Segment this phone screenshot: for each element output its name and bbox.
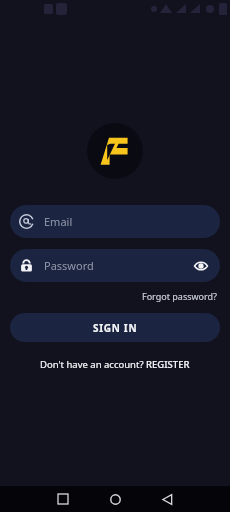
staticText: Password bbox=[44, 258, 94, 273]
button[interactable]: Forgot password? bbox=[140, 289, 220, 303]
button[interactable]: Don't have an account? bbox=[36, 356, 194, 373]
button[interactable]: Recent apps bbox=[46, 486, 80, 512]
staticText: REGISTER bbox=[146, 358, 190, 371]
button[interactable]: SIGN IN bbox=[10, 313, 220, 342]
staticText: Don't have an account? bbox=[40, 358, 146, 371]
staticText: Forgot password? bbox=[142, 290, 218, 302]
other: Email bbox=[19, 214, 34, 229]
other: Password bbox=[19, 258, 34, 273]
button[interactable]: Back bbox=[150, 486, 184, 512]
button[interactable]: Password bbox=[10, 249, 220, 282]
button[interactable]: Home bbox=[98, 486, 132, 512]
button[interactable]: Email bbox=[10, 205, 220, 238]
staticText: Email bbox=[44, 214, 73, 229]
staticText: SIGN IN bbox=[93, 321, 138, 335]
button[interactable]: Show password bbox=[191, 256, 211, 276]
